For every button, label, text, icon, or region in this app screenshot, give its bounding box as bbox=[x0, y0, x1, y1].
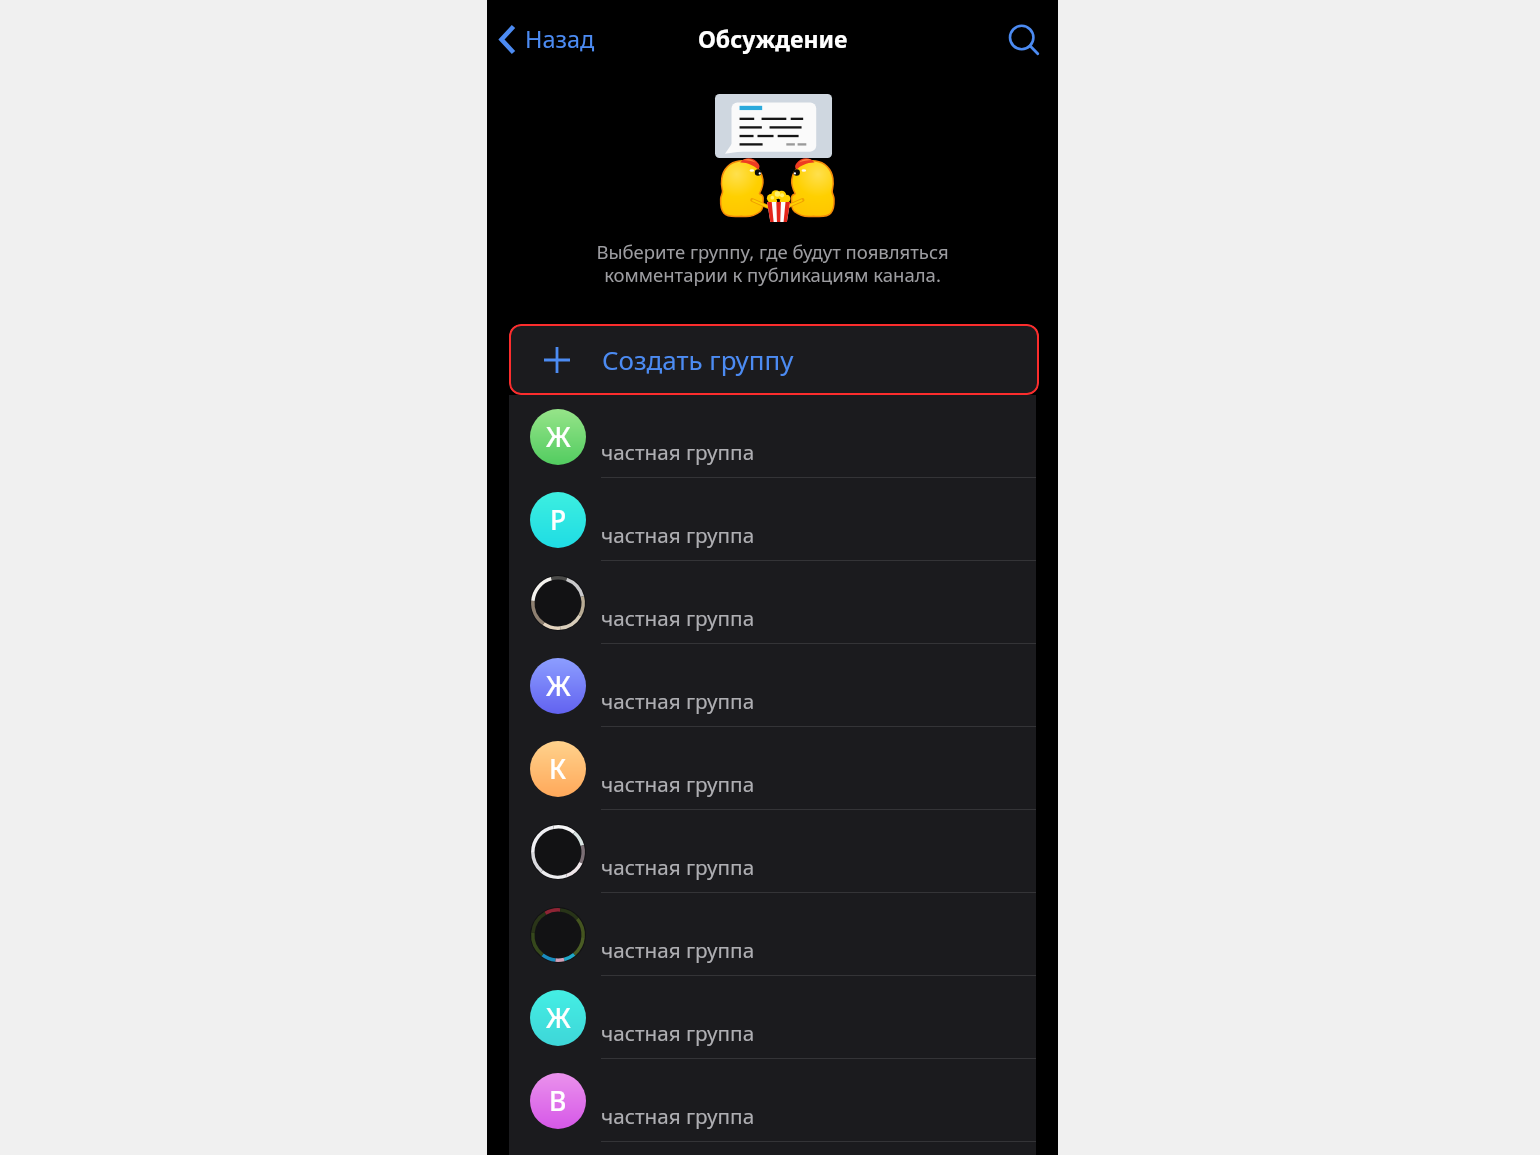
button[interactable]: частная группа bbox=[509, 561, 1036, 644]
staticText: Назад bbox=[525, 23, 595, 55]
staticText: частная группа bbox=[601, 936, 755, 964]
staticText: Ж bbox=[546, 1000, 571, 1036]
staticText: частная группа bbox=[601, 438, 755, 466]
staticText: Ж bbox=[546, 419, 571, 455]
button[interactable]: Поиск bbox=[1000, 13, 1052, 65]
staticText: частная группа bbox=[601, 853, 755, 881]
staticText: частная группа bbox=[601, 770, 755, 798]
button[interactable]: В bbox=[509, 1059, 1036, 1142]
button[interactable]: Назад bbox=[495, 15, 599, 63]
staticText: К bbox=[549, 751, 567, 787]
staticText: Р bbox=[550, 502, 567, 538]
staticText: частная группа bbox=[601, 1102, 755, 1130]
staticText: частная группа bbox=[601, 521, 755, 549]
button[interactable]: Ж bbox=[509, 395, 1036, 478]
staticText: частная группа bbox=[601, 604, 755, 632]
button[interactable]: Р bbox=[509, 478, 1036, 561]
staticText: частная группа bbox=[601, 1019, 755, 1047]
staticText: частная группа bbox=[601, 687, 755, 715]
button[interactable]: Ж bbox=[509, 644, 1036, 727]
button[interactable]: частная группа bbox=[509, 810, 1036, 893]
button[interactable]: Ж bbox=[509, 976, 1036, 1059]
staticText: Создать группу bbox=[602, 342, 794, 377]
button[interactable]: Создать группу bbox=[509, 324, 1039, 395]
staticText: Ж bbox=[546, 668, 571, 704]
staticText: В bbox=[549, 1083, 567, 1119]
button[interactable]: частная группа bbox=[509, 893, 1036, 976]
staticText: Выберите группу, где будут появляться ко… bbox=[596, 239, 949, 287]
button[interactable]: К bbox=[509, 727, 1036, 810]
staticText: Обсуждение bbox=[698, 23, 848, 54]
